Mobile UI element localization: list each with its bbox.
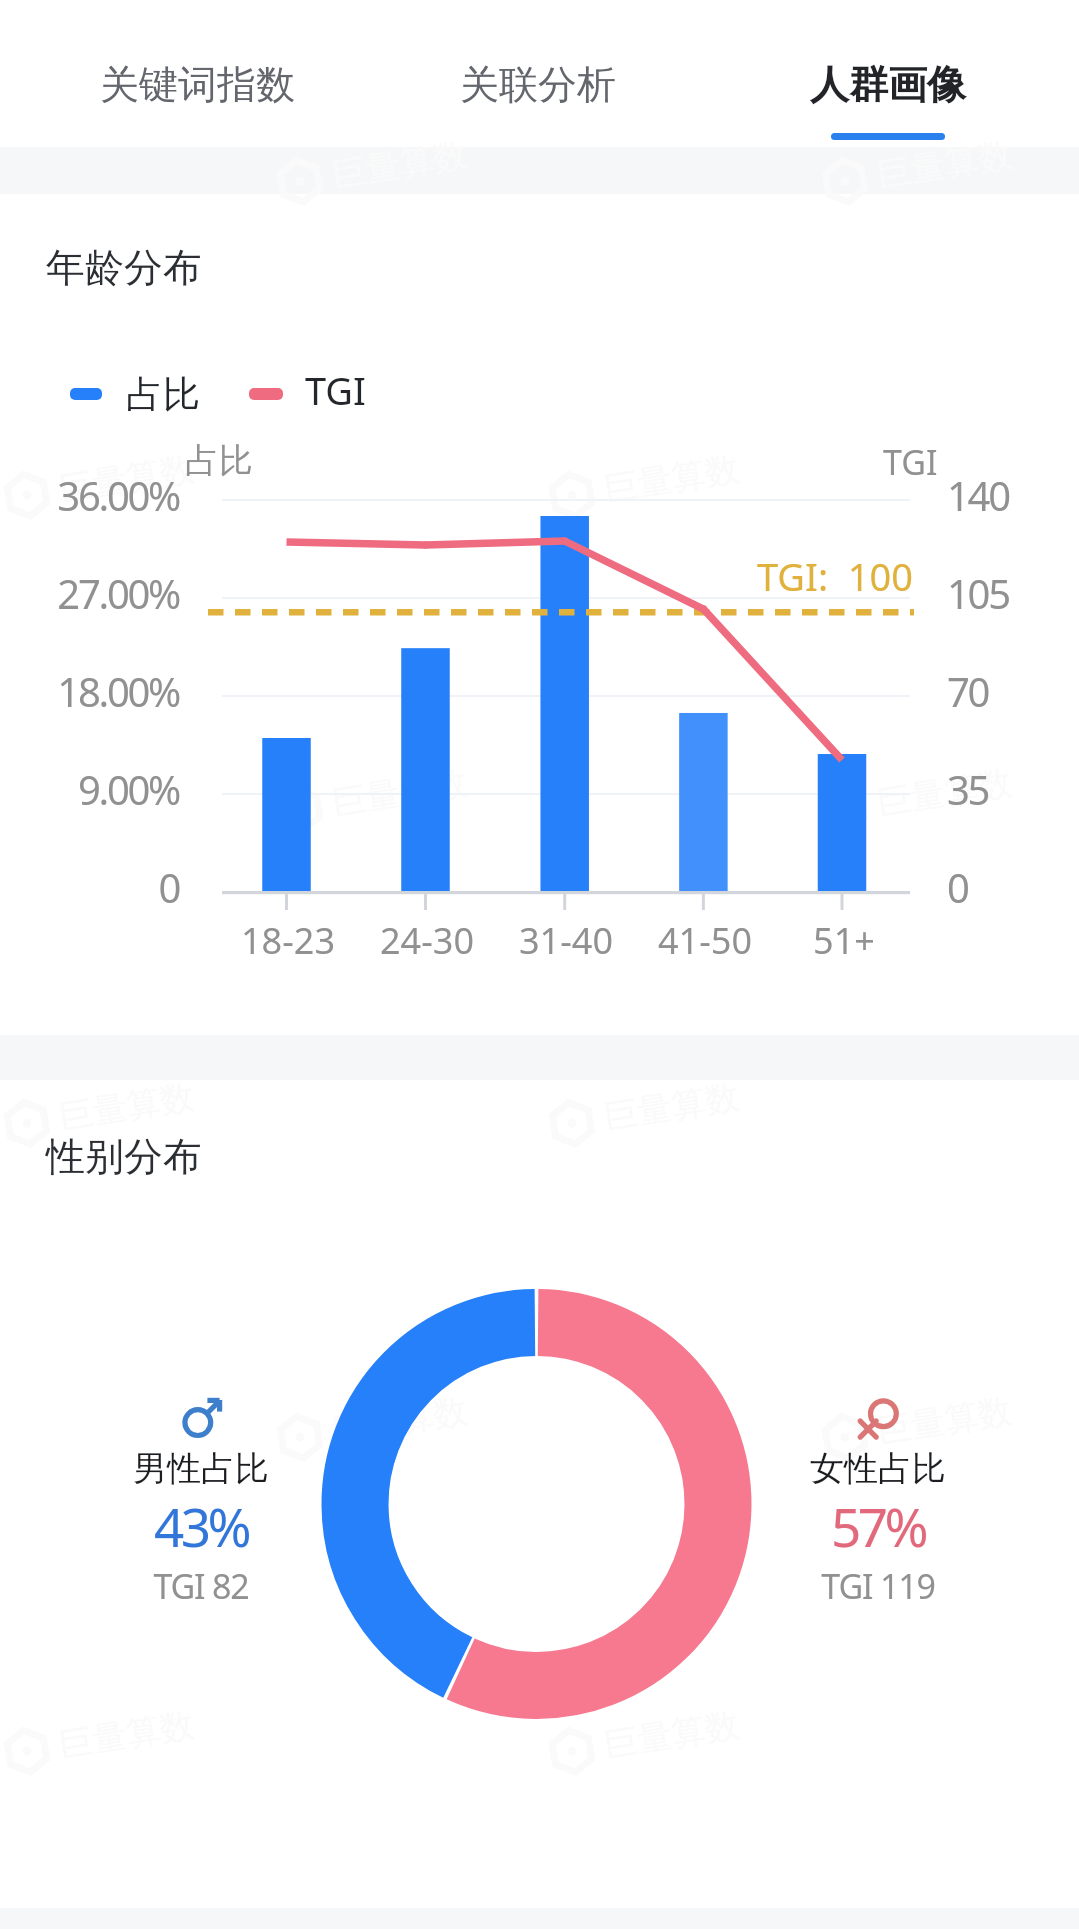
staticText: 性别分布 xyxy=(46,1132,202,1181)
staticText: 24-30 xyxy=(327,916,527,965)
staticText: 0 xyxy=(19,860,179,914)
staticText: TGI xyxy=(883,439,938,485)
staticText: 140 xyxy=(947,468,1009,522)
button[interactable]: TGI xyxy=(241,366,336,422)
staticText: 70 xyxy=(947,664,989,718)
staticText: 9.00% xyxy=(19,762,179,816)
staticText: 占比 xyxy=(126,371,200,418)
staticText: 占比 xyxy=(185,439,253,482)
button[interactable]: 人群画像 xyxy=(738,14,1038,140)
staticText: TGI 82 xyxy=(21,1563,381,1609)
staticText: 18-23 xyxy=(188,916,388,965)
staticText: 105 xyxy=(947,566,1009,620)
button[interactable]: 关联分析 xyxy=(388,14,688,140)
staticText: TGI: 100 xyxy=(757,550,914,602)
staticText: 41-50 xyxy=(605,916,805,965)
staticText: 0 xyxy=(947,860,968,914)
staticText: 43% xyxy=(21,1490,381,1562)
staticText: 女性占比 xyxy=(698,1447,1058,1490)
staticText: 男性占比 xyxy=(21,1447,381,1490)
staticText: 35 xyxy=(947,762,989,816)
staticText: 18.00% xyxy=(19,664,179,718)
staticText: 57% xyxy=(698,1490,1058,1562)
staticText: 人群画像 xyxy=(810,60,966,109)
staticText: 27.00% xyxy=(19,566,179,620)
staticText: TGI 119 xyxy=(698,1563,1058,1609)
button[interactable]: 关键词指数 xyxy=(47,14,347,140)
staticText: 年龄分布 xyxy=(46,243,202,292)
staticText: 36.00% xyxy=(19,468,179,522)
staticText: 关联分析 xyxy=(460,60,616,109)
staticText: TGI xyxy=(305,364,366,416)
staticText: 51+ xyxy=(744,916,944,965)
button[interactable]: 占比 xyxy=(62,366,168,422)
staticText: 31-40 xyxy=(466,916,666,965)
staticText: 关键词指数 xyxy=(100,60,295,109)
